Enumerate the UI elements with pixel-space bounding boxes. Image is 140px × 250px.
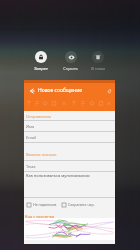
button[interactable]: Email (24, 133, 115, 143)
staticText: Email (26, 135, 37, 140)
button[interactable]: Имя (24, 122, 115, 132)
button[interactable]: Скрыть (56, 51, 84, 72)
staticText: Сохранить чер. (68, 202, 95, 207)
button[interactable]: Прикрепить файл (104, 86, 113, 95)
staticText: Скрыть (63, 66, 78, 72)
staticText: Имя (26, 124, 35, 129)
staticText: Новое сообщение (38, 87, 83, 94)
staticText: Тема (26, 164, 36, 169)
button[interactable]: Отправитель (24, 112, 115, 122)
button[interactable]: Сохранить чер. (62, 202, 95, 207)
button[interactable]: Важное письмо (24, 150, 115, 162)
staticText: Не подписыв. (33, 202, 57, 207)
button[interactable]: Код с картинки (25, 213, 55, 219)
staticText: Отправитель (26, 114, 52, 119)
staticText: В спам (91, 66, 105, 72)
staticText: Как пользоваться мультиязыком (26, 173, 90, 178)
button[interactable]: В спам (84, 51, 112, 72)
button[interactable]: Не подписыв. (27, 202, 57, 207)
button[interactable]: Запрет (27, 51, 55, 72)
staticText: Код с картинки (25, 214, 55, 219)
staticText: Запрет (34, 66, 48, 72)
button[interactable]: Тема (24, 162, 115, 172)
button[interactable]: Назад (27, 86, 36, 95)
staticText: Важное письмо (26, 152, 57, 157)
